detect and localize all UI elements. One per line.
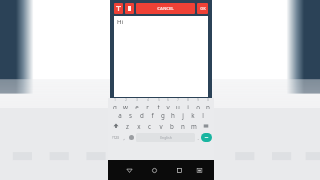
button[interactable]: Hi <box>114 16 208 97</box>
staticText: q <box>113 103 117 109</box>
button[interactable]: c <box>144 120 155 131</box>
button[interactable]: Space <box>136 133 195 142</box>
staticText: ?123 <box>112 136 119 140</box>
staticText: o <box>196 103 200 109</box>
staticText: 3 <box>136 98 138 102</box>
button[interactable]: k <box>188 109 198 120</box>
button[interactable]: z <box>122 120 133 131</box>
button[interactable]: Screenshot <box>192 163 206 177</box>
staticText: s <box>129 111 132 119</box>
button[interactable]: d <box>136 109 147 120</box>
staticText: g <box>161 111 165 119</box>
staticText: u <box>176 103 180 109</box>
staticText: 1 <box>114 98 116 102</box>
button[interactable]: 3 <box>131 98 142 109</box>
staticText: a <box>118 111 122 119</box>
staticText: i <box>187 103 189 109</box>
staticText: n <box>181 122 185 130</box>
staticText: 0 <box>207 98 209 102</box>
staticText: e <box>135 103 139 109</box>
staticText: 5 <box>158 98 160 102</box>
button[interactable]: j <box>178 109 188 120</box>
staticText: OK <box>200 6 206 11</box>
button[interactable]: 0 <box>203 98 213 109</box>
button[interactable]: x <box>133 120 144 131</box>
staticText: r <box>146 103 149 109</box>
button[interactable]: . <box>195 133 201 142</box>
staticText: k <box>191 111 195 119</box>
button[interactable]: 8 <box>183 98 193 109</box>
staticText: x <box>137 122 141 130</box>
button[interactable]: 1 <box>109 98 120 109</box>
button[interactable]: Backspace <box>199 120 213 131</box>
button[interactable]: h <box>168 109 178 120</box>
button[interactable]: v <box>155 120 166 131</box>
button[interactable]: b <box>166 120 177 131</box>
button[interactable]: l <box>198 109 208 120</box>
button[interactable]: 2 <box>120 98 131 109</box>
button[interactable]: Enter <box>201 133 212 142</box>
staticText: . <box>197 135 199 141</box>
button[interactable]: Emoji <box>127 133 136 142</box>
staticText: 7 <box>177 98 179 102</box>
button[interactable]: s <box>125 109 136 120</box>
staticText: f <box>151 111 154 119</box>
staticText: 9 <box>197 98 199 102</box>
button[interactable]: CANCEL <box>136 3 195 14</box>
staticText: l <box>202 111 204 119</box>
staticText: c <box>148 122 151 130</box>
button[interactable]: m <box>188 120 199 131</box>
button[interactable]: OK <box>197 3 208 14</box>
staticText: m <box>191 122 197 130</box>
staticText: 4 <box>147 98 149 102</box>
button[interactable]: f <box>147 109 158 120</box>
button[interactable]: Clear <box>125 3 134 14</box>
staticText: t <box>157 103 160 109</box>
button[interactable]: Recents <box>172 163 186 177</box>
button[interactable]: Shift <box>109 120 122 131</box>
staticText: j <box>182 111 184 119</box>
button[interactable]: 4 <box>142 98 153 109</box>
button[interactable]: 5 <box>153 98 163 109</box>
button[interactable]: 7 <box>173 98 183 109</box>
button[interactable]: 6 <box>163 98 173 109</box>
staticText: d <box>140 111 144 119</box>
staticText: h <box>171 111 175 119</box>
staticText: w <box>123 103 128 109</box>
button[interactable]: Text format <box>114 3 123 14</box>
staticText: , <box>123 135 125 141</box>
button[interactable]: g <box>158 109 168 120</box>
staticText: English <box>160 135 172 140</box>
staticText: Hi <box>117 18 123 26</box>
button[interactable]: n <box>177 120 188 131</box>
staticText: b <box>170 122 174 130</box>
button[interactable]: Home <box>147 163 161 177</box>
staticText: CANCEL <box>157 6 174 12</box>
button[interactable]: ?123 <box>110 133 121 142</box>
staticText: v <box>159 122 163 130</box>
staticText: p <box>206 103 210 109</box>
button[interactable]: 9 <box>193 98 203 109</box>
button[interactable]: , <box>121 133 127 142</box>
button[interactable]: Back <box>122 163 136 177</box>
staticText: y <box>166 103 170 109</box>
staticText: 2 <box>125 98 127 102</box>
staticText: 6 <box>167 98 169 102</box>
button[interactable]: a <box>114 109 125 120</box>
staticText: z <box>126 122 129 130</box>
staticText: 8 <box>187 98 189 102</box>
